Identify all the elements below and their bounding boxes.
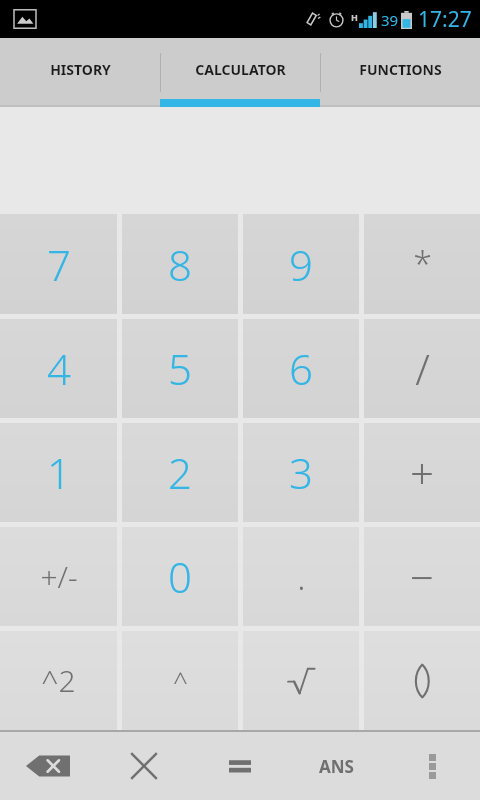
- button[interactable]: +: [364, 423, 480, 522]
- staticText: +/-: [40, 556, 78, 597]
- button[interactable]: +/-: [0, 527, 117, 626]
- button[interactable]: 0: [122, 527, 238, 626]
- button[interactable]: CALCULATOR: [161, 38, 320, 107]
- button[interactable]: −: [364, 527, 480, 626]
- button[interactable]: /: [364, 319, 480, 418]
- button[interactable]: 1: [0, 423, 117, 522]
- staticText: 39: [381, 10, 399, 30]
- staticText: ^: [173, 663, 188, 698]
- staticText: −: [410, 548, 434, 605]
- button[interactable]: 3: [243, 423, 359, 522]
- staticText: *: [413, 241, 432, 287]
- button[interactable]: More options: [384, 732, 480, 800]
- button[interactable]: ANS: [288, 732, 384, 800]
- staticText: ^2: [41, 660, 76, 701]
- staticText: 17:27: [418, 5, 472, 34]
- button[interactable]: 5: [122, 319, 238, 418]
- staticText: 1: [47, 444, 71, 501]
- staticText: 8: [168, 236, 192, 293]
- button[interactable]: Clear: [96, 732, 192, 800]
- staticText: /: [415, 340, 430, 397]
- button[interactable]: 8: [122, 214, 238, 314]
- staticText: H: [351, 11, 358, 23]
- button[interactable]: 7: [0, 214, 117, 314]
- staticText: 3: [289, 444, 313, 501]
- staticText: 4: [47, 340, 71, 397]
- staticText: 7: [47, 236, 71, 293]
- button[interactable]: Equals: [192, 732, 288, 800]
- button[interactable]: ^2: [0, 631, 117, 730]
- staticText: 9: [289, 236, 313, 293]
- staticText: 6: [289, 340, 313, 397]
- staticText: 0: [168, 548, 192, 605]
- staticText: CALCULATOR: [195, 60, 286, 79]
- button[interactable]: 2: [122, 423, 238, 522]
- button[interactable]: FUNCTIONS: [321, 38, 480, 107]
- staticText: 2: [168, 444, 192, 501]
- button[interactable]: 4: [0, 319, 117, 418]
- button[interactable]: 9: [243, 214, 359, 314]
- staticText: HISTORY: [50, 60, 111, 79]
- staticText: FUNCTIONS: [359, 60, 442, 79]
- staticText: +: [410, 444, 434, 501]
- staticText: .: [297, 554, 306, 600]
- button[interactable]: *: [364, 214, 480, 314]
- staticText: ANS: [319, 755, 354, 778]
- button[interactable]: HISTORY: [0, 38, 160, 107]
- button[interactable]: Backspace: [0, 732, 96, 800]
- staticText: 5: [168, 340, 192, 397]
- button[interactable]: ^: [122, 631, 238, 730]
- button[interactable]: Square root: [243, 631, 359, 730]
- button[interactable]: 6: [243, 319, 359, 418]
- button[interactable]: Parentheses: [364, 631, 480, 730]
